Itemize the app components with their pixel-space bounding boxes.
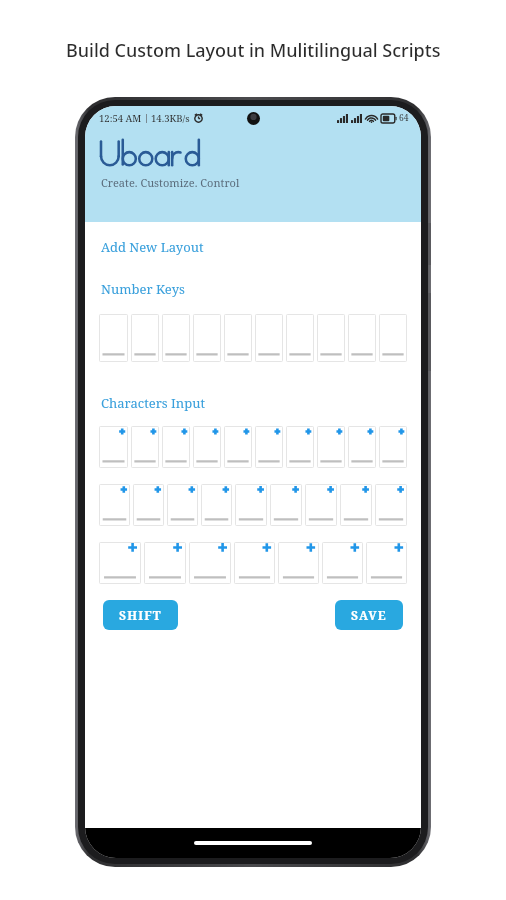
button[interactable]: Number key	[99, 314, 128, 362]
button[interactable]: Add character	[99, 484, 130, 526]
staticText: 64	[399, 112, 409, 124]
button[interactable]: Number key	[162, 314, 190, 362]
button[interactable]: Add character	[193, 426, 221, 468]
button[interactable]: Add character	[189, 542, 231, 584]
button[interactable]: Add character	[375, 484, 407, 526]
button[interactable]: Add character	[201, 484, 232, 526]
staticText: Number Keys	[101, 280, 185, 298]
button[interactable]: Add character	[340, 484, 372, 526]
button[interactable]: Add New Layout	[101, 238, 204, 256]
button[interactable]: Add character	[379, 426, 407, 468]
button[interactable]: Add character	[255, 426, 283, 468]
button[interactable]: Number key	[379, 314, 407, 362]
staticText: 12:54 AM	[99, 112, 142, 125]
button[interactable]: Add character	[317, 426, 345, 468]
button[interactable]: Add character	[270, 484, 302, 526]
button[interactable]: Add character	[235, 484, 267, 526]
staticText: Create. Customize. Control	[101, 175, 240, 190]
button[interactable]: Add character	[99, 542, 141, 584]
staticText: Characters Input	[101, 394, 206, 412]
staticText: SHIFT	[119, 607, 162, 623]
button[interactable]: SHIFT	[103, 600, 178, 630]
staticText: Build Custom Layout in Mulitilingual Scr…	[66, 38, 441, 63]
button[interactable]: Number key	[255, 314, 283, 362]
button[interactable]: Add character	[167, 484, 198, 526]
button[interactable]: Add character	[305, 484, 337, 526]
button[interactable]: Number key	[224, 314, 252, 362]
button[interactable]: Add character	[278, 542, 319, 584]
button[interactable]: Number key	[131, 314, 159, 362]
button[interactable]: Add character	[234, 542, 275, 584]
button[interactable]: Add character	[224, 426, 252, 468]
button[interactable]: SAVE	[335, 600, 403, 630]
button[interactable]: Add character	[348, 426, 376, 468]
button[interactable]: Number key	[348, 314, 376, 362]
button[interactable]: Add character	[133, 484, 164, 526]
button[interactable]: Number key	[317, 314, 345, 362]
button[interactable]: Add character	[366, 542, 407, 584]
staticText: 14.3KB/s	[151, 112, 190, 125]
button[interactable]: Add character	[286, 426, 314, 468]
button[interactable]: Add character	[131, 426, 159, 468]
button[interactable]: Add character	[162, 426, 190, 468]
staticText: SAVE	[351, 607, 387, 623]
button[interactable]: Number key	[193, 314, 221, 362]
button[interactable]: Number key	[286, 314, 314, 362]
button[interactable]: Add character	[322, 542, 363, 584]
button[interactable]: Add character	[144, 542, 186, 584]
button[interactable]: Add character	[99, 426, 128, 468]
